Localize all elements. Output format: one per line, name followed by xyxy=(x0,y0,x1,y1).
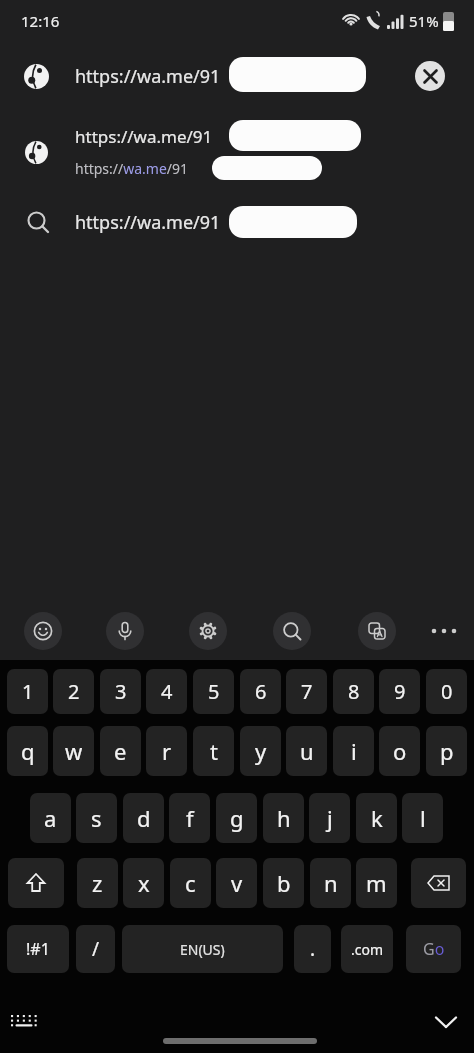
staticText: l xyxy=(420,803,426,833)
staticText: / xyxy=(92,936,100,962)
button[interactable]: c xyxy=(170,858,211,908)
button[interactable]: 4 xyxy=(146,669,187,714)
staticText: k xyxy=(371,803,383,833)
staticText: EN(US) xyxy=(180,940,225,959)
button[interactable] xyxy=(424,611,464,651)
button[interactable]: d xyxy=(123,793,164,843)
button[interactable]: k xyxy=(356,793,397,843)
button[interactable] xyxy=(106,612,144,650)
staticText: h xyxy=(277,803,291,833)
button[interactable]: x xyxy=(123,858,164,908)
staticText: m xyxy=(366,868,387,898)
staticText: https://wa.me/91 xyxy=(75,159,189,178)
staticText: .com xyxy=(351,940,384,959)
button[interactable]: a xyxy=(30,793,71,843)
button[interactable]: y xyxy=(240,726,281,776)
staticText: 7 xyxy=(301,678,313,705)
staticText: 4 xyxy=(161,678,173,705)
button[interactable]: 8 xyxy=(333,669,374,714)
staticText: g xyxy=(230,803,244,833)
staticText: q xyxy=(21,736,35,766)
button[interactable]: s xyxy=(76,793,117,843)
staticText: Go xyxy=(423,938,445,960)
button[interactable]: 3 xyxy=(100,669,141,714)
button[interactable]: h xyxy=(263,793,304,843)
button[interactable] xyxy=(189,612,227,650)
button[interactable]: EN(US) xyxy=(122,925,283,973)
button[interactable]: Go xyxy=(406,925,461,973)
staticText: a xyxy=(44,803,57,833)
staticText: d xyxy=(137,803,151,833)
button[interactable]: n xyxy=(310,858,351,908)
staticText: 0 xyxy=(441,678,453,705)
button[interactable]: l xyxy=(402,793,443,843)
staticText: n xyxy=(324,868,338,898)
staticText: 3 xyxy=(115,678,127,705)
button[interactable]: 2 xyxy=(53,669,94,714)
staticText: 12:16 xyxy=(21,11,60,31)
staticText: !#1 xyxy=(26,938,50,960)
staticText: b xyxy=(277,868,291,898)
button[interactable]: / xyxy=(76,925,115,973)
staticText: w xyxy=(65,736,83,766)
staticText: y xyxy=(255,736,267,766)
staticText: t xyxy=(210,736,218,766)
button[interactable]: m xyxy=(356,858,397,908)
button[interactable]: https://wa.me/91 xyxy=(0,50,474,102)
button[interactable]: g xyxy=(216,793,257,843)
button[interactable]: p xyxy=(426,726,467,776)
staticText: x xyxy=(138,868,150,898)
button[interactable]: . xyxy=(294,925,331,973)
button[interactable]: j xyxy=(309,793,350,843)
button[interactable] xyxy=(24,612,62,650)
staticText: 9 xyxy=(394,678,406,705)
button[interactable]: z xyxy=(77,858,118,908)
button[interactable]: 5 xyxy=(193,669,234,714)
button[interactable]: 1 xyxy=(7,669,48,714)
staticText: r xyxy=(162,736,172,766)
button[interactable]: v xyxy=(216,858,257,908)
button[interactable] xyxy=(411,858,466,908)
staticText: f xyxy=(186,803,194,833)
button[interactable]: b xyxy=(263,858,304,908)
button[interactable]: r xyxy=(146,726,187,776)
button[interactable]: .com xyxy=(341,925,393,973)
button[interactable]: f xyxy=(169,793,210,843)
staticText: 2 xyxy=(68,678,80,705)
staticText: 8 xyxy=(348,678,360,705)
staticText: i xyxy=(351,736,357,766)
staticText: u xyxy=(300,736,314,766)
button[interactable]: 7 xyxy=(286,669,327,714)
button[interactable] xyxy=(415,61,445,91)
button[interactable]: u xyxy=(286,726,327,776)
button[interactable]: i xyxy=(333,726,374,776)
button[interactable] xyxy=(8,858,64,908)
staticText: s xyxy=(91,803,102,833)
button[interactable] xyxy=(273,612,311,650)
staticText: v xyxy=(231,868,243,898)
staticText: z xyxy=(92,868,103,898)
button[interactable]: 6 xyxy=(240,669,281,714)
staticText: o xyxy=(393,736,407,766)
button[interactable] xyxy=(358,612,396,650)
button[interactable]: t xyxy=(193,726,234,776)
button[interactable]: q xyxy=(7,726,48,776)
button[interactable] xyxy=(418,1000,474,1045)
button[interactable]: w xyxy=(53,726,94,776)
staticText: c xyxy=(185,868,196,898)
button[interactable]: !#1 xyxy=(7,925,69,973)
staticText: https://wa.me/91 xyxy=(75,210,221,235)
button[interactable]: 0 xyxy=(426,669,467,714)
staticText: https://wa.me/91 xyxy=(75,64,221,89)
button[interactable]: o xyxy=(379,726,420,776)
staticText: https://wa.me/91 xyxy=(75,125,213,148)
staticText: e xyxy=(114,736,127,766)
staticText: p xyxy=(440,736,454,766)
button[interactable]: e xyxy=(100,726,141,776)
staticText: 6 xyxy=(255,678,267,705)
button[interactable] xyxy=(0,1001,54,1041)
button[interactable]: 9 xyxy=(379,669,420,714)
button[interactable]: https://wa.me/91 xyxy=(0,114,474,186)
button[interactable]: https://wa.me/91 xyxy=(0,198,474,248)
staticText: . xyxy=(310,936,316,962)
